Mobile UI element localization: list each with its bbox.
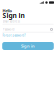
staticText: Hello (2, 8, 12, 13)
staticText: Email address (3, 20, 20, 23)
staticText: Sign in (21, 43, 35, 49)
staticText: Forgot password? (2, 34, 25, 37)
button[interactable]: Forgot password? (2, 33, 25, 37)
button[interactable]: Sign in (2, 42, 54, 50)
button[interactable]: Show password (49, 27, 54, 31)
staticText: Password (3, 28, 15, 31)
staticText: Sign in (2, 11, 24, 20)
